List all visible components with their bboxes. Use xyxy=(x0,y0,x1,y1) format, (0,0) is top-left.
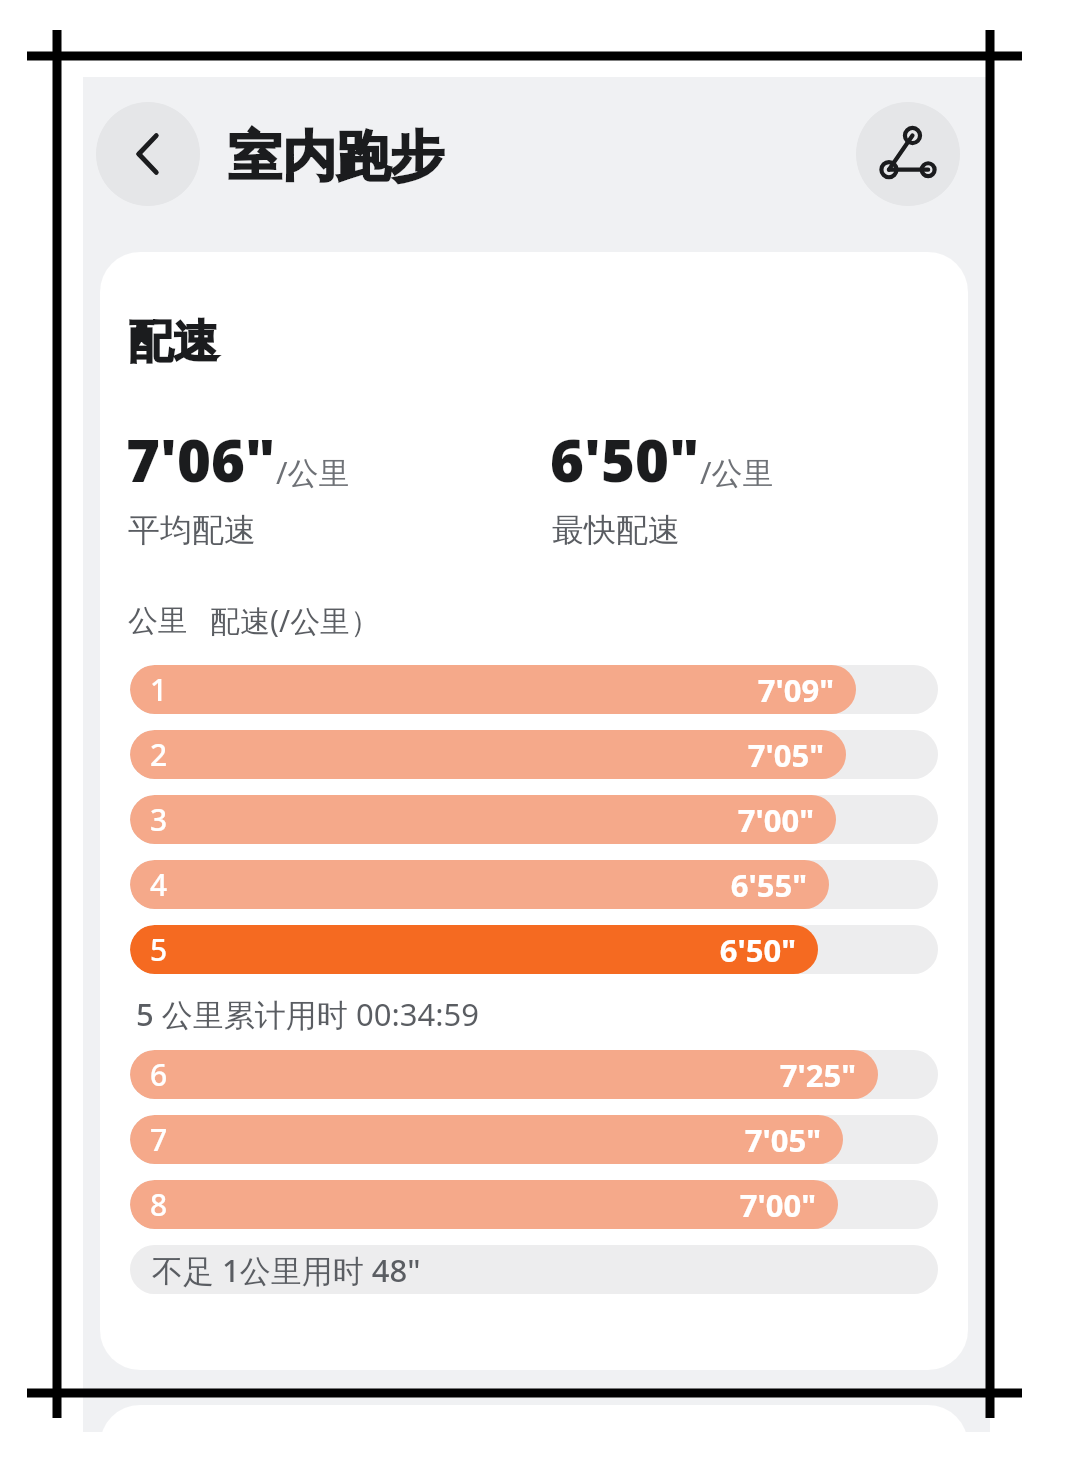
staticText: 7'06" xyxy=(126,420,276,499)
button[interactable]: 7 xyxy=(130,1115,938,1164)
staticText: 4 xyxy=(150,864,168,905)
staticText: 最快配速 xyxy=(552,510,680,550)
staticText: 7'00" xyxy=(739,1184,816,1226)
staticText: 1 xyxy=(150,669,168,710)
staticText: 7 xyxy=(150,1119,168,1160)
staticText: 7'00" xyxy=(737,799,814,841)
staticText: 公里 xyxy=(128,602,188,640)
staticText: 6 xyxy=(150,1054,168,1095)
button[interactable]: 3 xyxy=(130,795,938,844)
staticText: 7'05" xyxy=(744,1119,821,1161)
staticText: 配速(/公里） xyxy=(210,600,381,641)
staticText: 8 xyxy=(150,1184,168,1225)
staticText: 7'05" xyxy=(747,734,824,776)
button[interactable]: 5 xyxy=(130,925,938,974)
staticText: /公里 xyxy=(700,451,774,493)
button[interactable]: Share xyxy=(856,102,960,206)
staticText: 6'50" xyxy=(550,420,700,499)
staticText: 6'55" xyxy=(730,864,807,906)
button[interactable]: Back xyxy=(96,102,200,206)
button[interactable]: 2 xyxy=(130,730,938,779)
button[interactable]: 8 xyxy=(130,1180,938,1229)
staticText: 室内跑步 xyxy=(228,123,444,191)
button[interactable]: 1 xyxy=(130,665,938,714)
staticText: 3 xyxy=(150,799,168,840)
staticText: 5 公里累计用时 xyxy=(136,993,356,1035)
staticText: 00:34:59 xyxy=(356,993,480,1035)
staticText: 7'09" xyxy=(757,669,834,711)
staticText: 平均配速 xyxy=(128,510,256,550)
button[interactable]: 4 xyxy=(130,860,938,909)
staticText: /公里 xyxy=(276,451,350,493)
staticText: 5 xyxy=(150,929,168,970)
staticText: 配速 xyxy=(128,314,218,371)
button[interactable]: 6 xyxy=(130,1050,938,1099)
staticText: 2 xyxy=(150,734,168,775)
staticText: 7'25" xyxy=(779,1054,856,1096)
button[interactable]: 不足 1公里用时 48" xyxy=(130,1245,938,1294)
staticText: 不足 1公里用时 48" xyxy=(152,1249,421,1291)
staticText: 6'50" xyxy=(719,929,796,971)
